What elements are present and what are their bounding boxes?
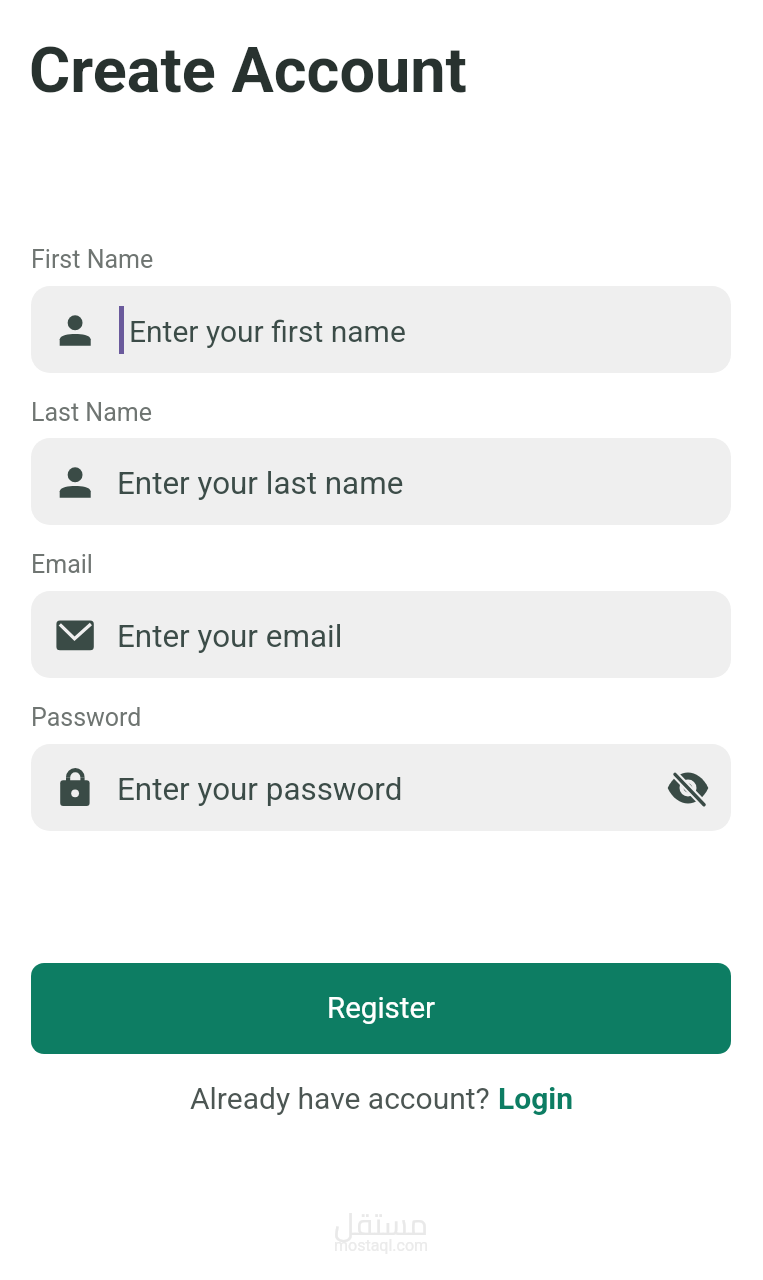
staticText: Password bbox=[31, 703, 142, 732]
staticText: Create Account bbox=[29, 34, 467, 108]
button[interactable]: Register bbox=[31, 963, 731, 1054]
staticText: Login bbox=[498, 1081, 574, 1116]
button[interactable]: Enter your email bbox=[31, 591, 731, 678]
staticText: Enter your password bbox=[117, 771, 403, 808]
staticText: Register bbox=[327, 991, 436, 1026]
button[interactable]: Enter your password bbox=[31, 744, 731, 831]
staticText: Enter your first name bbox=[129, 314, 406, 349]
button[interactable]: Show password bbox=[653, 753, 723, 823]
staticText: First Name bbox=[31, 245, 154, 274]
staticText: Enter your last name bbox=[117, 465, 404, 502]
button[interactable]: Enter your last name bbox=[31, 438, 731, 525]
staticText: Last Name bbox=[31, 398, 152, 427]
button[interactable]: Enter your first name bbox=[31, 286, 731, 373]
staticText: mostaql.com bbox=[334, 1236, 429, 1255]
button[interactable]: Login bbox=[498, 1081, 574, 1116]
staticText: Already have account? bbox=[190, 1081, 498, 1116]
staticText: Enter your email bbox=[117, 618, 343, 655]
staticText: مستقل bbox=[334, 1196, 429, 1252]
staticText: Email bbox=[31, 550, 93, 579]
